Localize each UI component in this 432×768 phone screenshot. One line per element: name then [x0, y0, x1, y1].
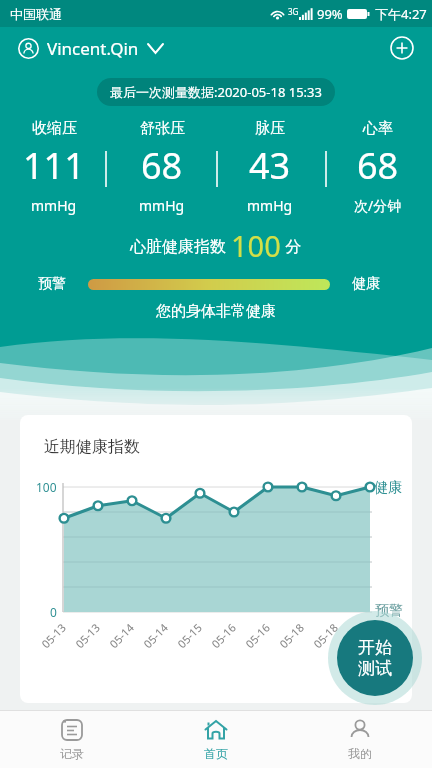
staticText: 预警 [375, 602, 403, 620]
staticText: 100 [36, 479, 57, 495]
staticText: 健康 [374, 479, 402, 497]
staticText: mmHg [247, 196, 293, 215]
button[interactable]: 开始 [337, 620, 413, 696]
staticText: mmHg [31, 196, 77, 215]
staticText: 111 [23, 141, 85, 190]
staticText: 记录 [60, 746, 84, 761]
staticText: Vincent.Qin [47, 37, 139, 60]
staticText: 收缩压 [32, 119, 77, 138]
staticText: 05-14 [140, 620, 171, 651]
staticText: 05-16 [242, 620, 273, 651]
staticText: 05-18 [310, 620, 341, 651]
staticText: 我的 [348, 746, 372, 761]
staticText: 05-13 [72, 620, 103, 651]
staticText: 0 [50, 604, 57, 620]
staticText: 近期健康指数 [44, 437, 140, 457]
staticText: 05-16 [208, 620, 239, 651]
staticText: 心脏健康指数 [130, 235, 231, 257]
staticText: 心率 [363, 119, 393, 138]
staticText: 首页 [204, 746, 228, 761]
staticText: 您的身体非常健康 [156, 302, 276, 321]
staticText: 脉压 [255, 119, 285, 138]
button[interactable]: Vincent.Qin [18, 37, 163, 60]
staticText: 中国联通 [10, 6, 62, 22]
staticText: 预警 [38, 275, 66, 293]
button[interactable] [390, 36, 414, 60]
staticText: 68 [141, 141, 183, 190]
staticText: 05-18 [344, 620, 375, 651]
staticText: 05-15 [174, 620, 205, 651]
staticText: 68 [357, 141, 399, 190]
staticText: 最后一次测量数据:2020-05-18 15:33 [110, 83, 322, 101]
staticText: 测试 [358, 658, 392, 679]
staticText: mmHg [139, 196, 185, 215]
staticText: 次/分钟 [354, 196, 402, 215]
staticText: 05-13 [38, 620, 69, 651]
staticText: 分 [281, 235, 302, 257]
staticText: 开始 [358, 637, 392, 658]
staticText: 舒张压 [140, 119, 185, 138]
staticText: 05-14 [106, 620, 137, 651]
button[interactable]: 我的 [288, 710, 432, 768]
button[interactable]: 记录 [0, 710, 144, 768]
staticText: 3G [288, 6, 299, 17]
button[interactable]: 首页 [144, 710, 288, 768]
staticText: 99% [317, 5, 343, 23]
staticText: 健康 [352, 275, 380, 293]
staticText: 43 [249, 141, 291, 190]
staticText: 100 [231, 226, 281, 265]
staticText: 下午4:27 [375, 5, 427, 23]
staticText: 05-18 [276, 620, 307, 651]
